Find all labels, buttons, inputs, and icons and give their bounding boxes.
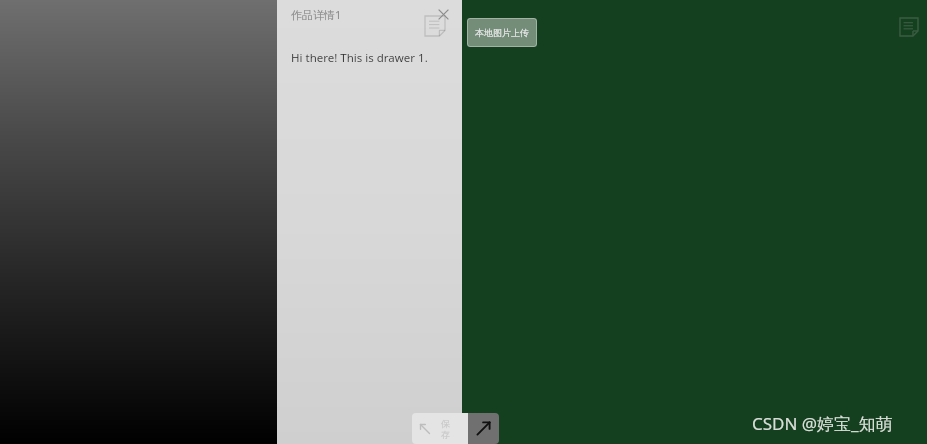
button[interactable]: Expand (468, 413, 499, 444)
staticText: 本地图片上传 (475, 27, 529, 38)
staticText: CSDN @婷宝_知萌 (752, 412, 893, 435)
staticText: 保 (441, 418, 450, 429)
button[interactable]: Collapse (412, 413, 468, 444)
staticText: Hi there! This is drawer 1. (291, 50, 428, 66)
staticText: 存 (441, 429, 450, 440)
button[interactable]: 本地图片上传 (467, 18, 537, 47)
staticText: 作品详情1 (291, 7, 342, 22)
button[interactable]: Notes (896, 14, 922, 40)
other: Collapse (418, 422, 432, 436)
button[interactable]: Close (432, 3, 454, 25)
